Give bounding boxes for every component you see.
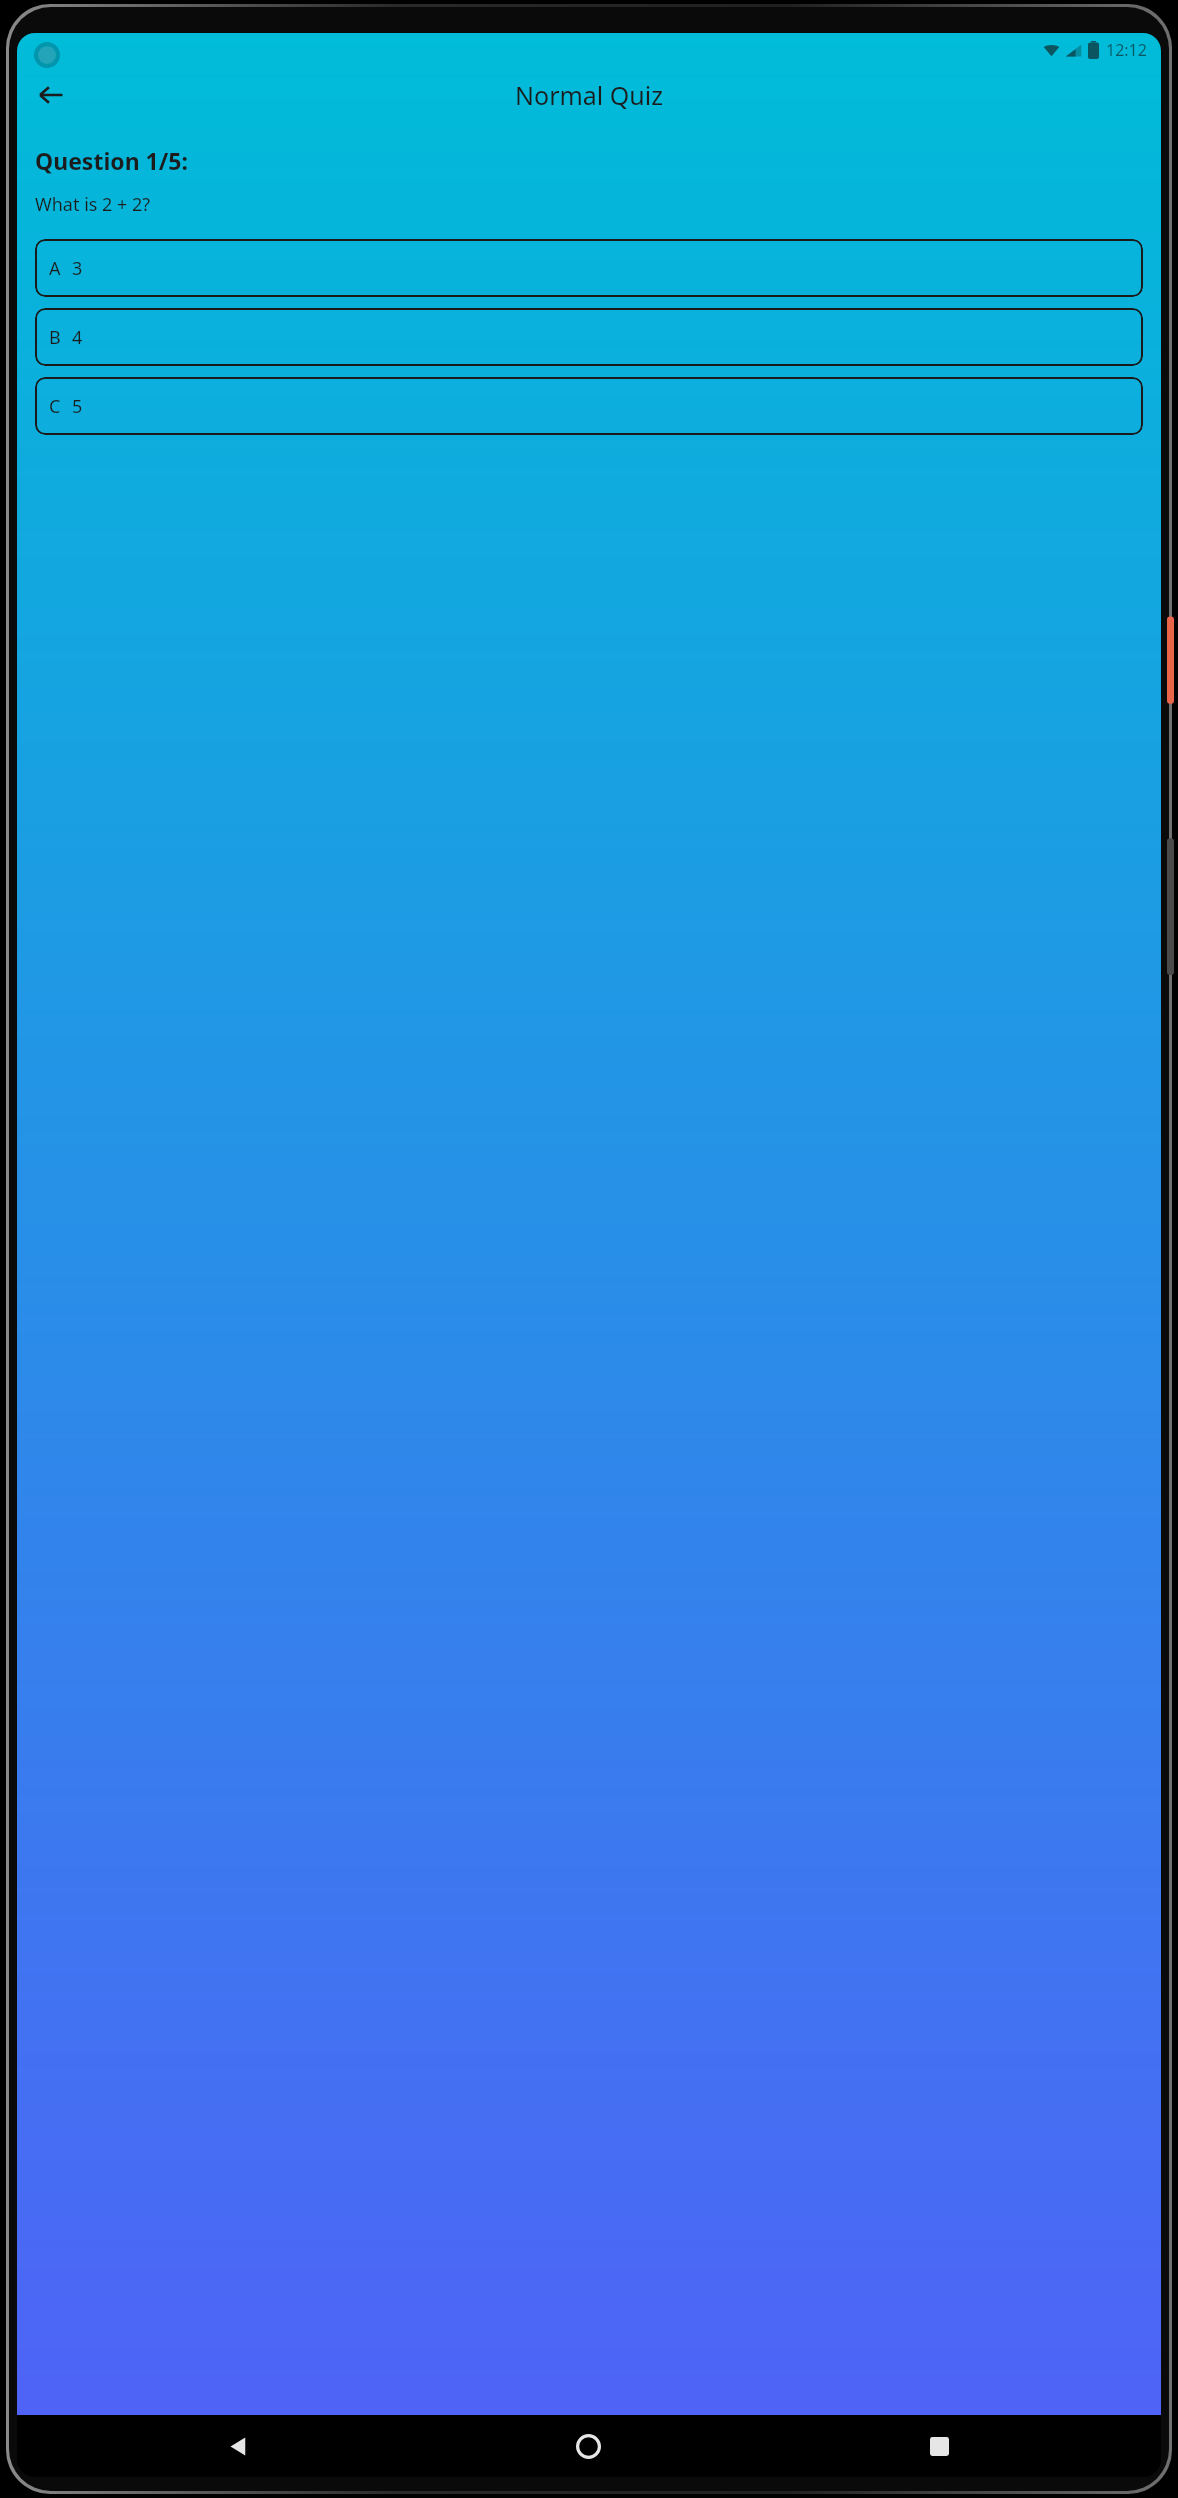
button[interactable]: Home (413, 2415, 764, 2477)
button[interactable]: A (35, 239, 1143, 297)
staticText: 5 (72, 394, 83, 419)
button[interactable]: Back (63, 2415, 413, 2477)
button[interactable]: Recent apps (764, 2415, 1115, 2477)
button[interactable]: Back (27, 71, 75, 119)
staticText: What is 2 + 2? (35, 192, 151, 217)
staticText: 3 (72, 256, 83, 281)
button[interactable]: B (35, 308, 1143, 366)
staticText: Question 1/5: (35, 145, 188, 176)
button[interactable]: C (35, 377, 1143, 435)
staticText: C (49, 394, 61, 419)
staticText: B (49, 325, 61, 350)
staticText: 12:12 (1106, 39, 1147, 61)
staticText: 4 (72, 325, 83, 350)
staticText: A (49, 256, 61, 281)
staticText: Normal Quiz (515, 78, 663, 112)
